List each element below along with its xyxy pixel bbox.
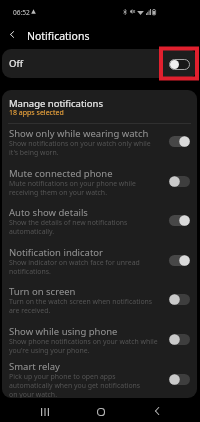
button[interactable]: Smart relay toggle <box>169 374 190 385</box>
staticText: Show the details of new notifications <box>9 218 128 227</box>
staticText: receiving them on your watch. <box>9 188 107 197</box>
button[interactable]: Turn on screen toggle <box>169 294 190 305</box>
staticText: Off <box>9 57 23 70</box>
button[interactable]: Back <box>138 400 175 422</box>
button[interactable]: Auto show details <box>2 200 197 240</box>
button[interactable]: Show only while wearing watch toggle <box>169 136 190 147</box>
button[interactable]: Navigate back <box>2 24 22 44</box>
staticText: Mute notifications on your phone while <box>9 179 136 188</box>
staticText: 06:52 <box>13 8 30 17</box>
staticText: 18 apps selected <box>9 108 64 118</box>
button[interactable]: Show while using phone <box>2 319 197 359</box>
button[interactable]: Turn on screen <box>2 279 197 319</box>
staticText: notifications. <box>9 267 51 276</box>
staticText: Show indicator on watch face for unread <box>9 258 140 267</box>
button[interactable]: Mute connected phone toggle <box>169 176 190 187</box>
staticText: on your watch. <box>9 390 57 398</box>
staticText: Show only while wearing watch <box>9 127 149 140</box>
staticText: you're using your phone. <box>9 346 90 355</box>
staticText: it's being worn. <box>9 148 59 157</box>
button[interactable]: Notifications on off <box>169 59 190 70</box>
staticText: Manage notifications <box>9 97 103 110</box>
staticText: Pick up your phone to open apps <box>9 372 116 381</box>
staticText: Notifications <box>27 29 90 43</box>
button[interactable]: Home <box>82 400 119 422</box>
staticText: Turn on the watch screen when notificati… <box>9 297 153 306</box>
button[interactable]: Auto show details toggle <box>169 215 190 226</box>
staticText: automatically when you get notifications <box>9 381 141 390</box>
button[interactable]: Notification indicator <box>2 240 197 280</box>
button[interactable]: Show while using phone toggle <box>169 334 190 345</box>
button[interactable]: Smart relay <box>2 359 197 398</box>
staticText: Mute connected phone <box>9 167 113 180</box>
staticText: automatically. <box>9 227 55 236</box>
button[interactable]: Off <box>2 49 197 78</box>
staticText: Show while using phone <box>9 325 118 338</box>
button[interactable]: Manage notifications <box>2 90 197 122</box>
button[interactable]: Mute connected phone <box>2 161 197 201</box>
staticText: Show notifications on your watch only wh… <box>9 139 151 148</box>
button[interactable]: Recent apps <box>26 400 63 422</box>
staticText: Auto show details <box>9 206 88 219</box>
staticText: Smart relay <box>9 360 60 373</box>
button[interactable]: Show only while wearing watch <box>2 121 197 161</box>
staticText: are received. <box>9 306 51 315</box>
staticText: Notification indicator <box>9 246 104 259</box>
button[interactable]: Notification indicator toggle <box>169 255 190 266</box>
staticText: Turn on screen <box>9 285 76 298</box>
staticText: Show phone notifications on your watch w… <box>9 337 158 346</box>
